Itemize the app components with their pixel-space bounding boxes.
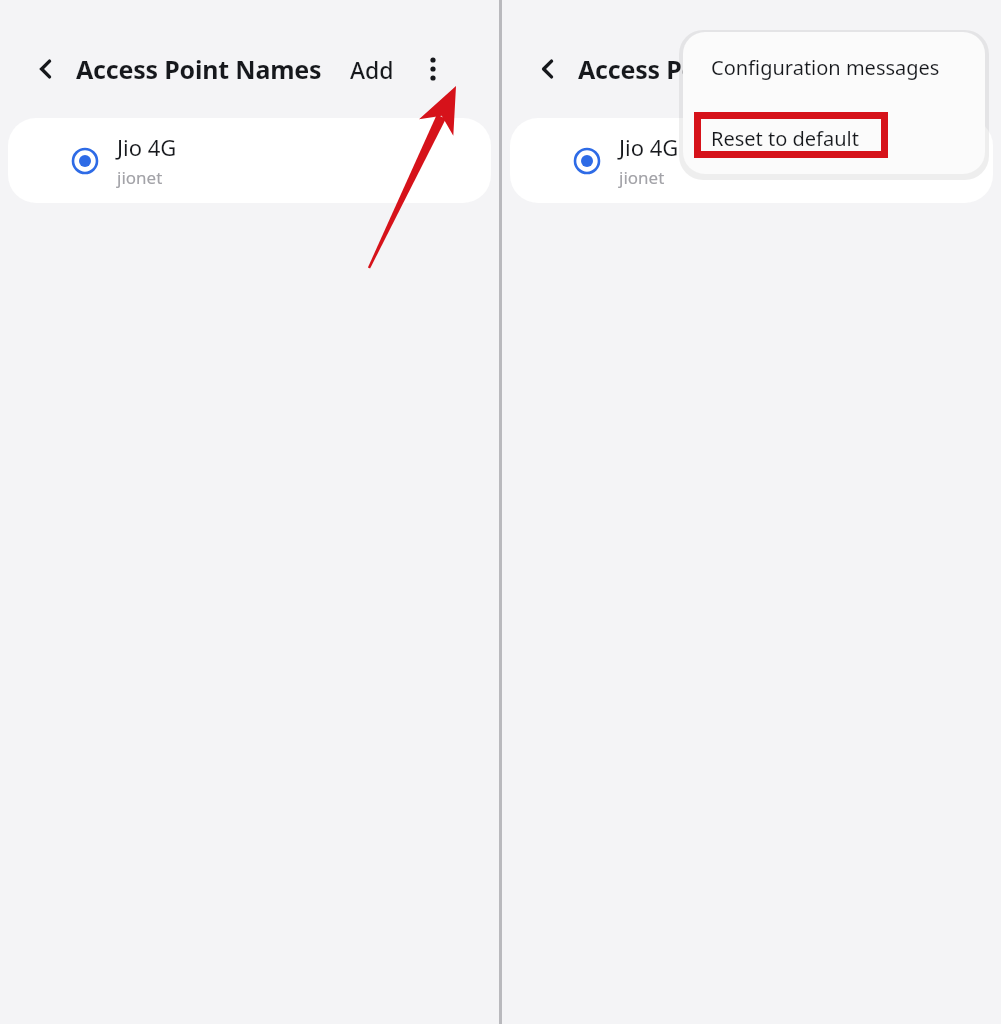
staticText: Jio 4G	[117, 132, 177, 162]
staticText: Configuration messages	[711, 54, 940, 81]
button[interactable]: Jio 4G	[510, 118, 993, 203]
staticText: Access Point Names	[76, 52, 322, 86]
staticText: Reset to default	[711, 125, 859, 152]
button[interactable]: Jio 4G	[8, 118, 491, 203]
staticText: jionet	[619, 166, 665, 189]
staticText: Access Point Names	[578, 52, 824, 86]
button[interactable]: Add	[348, 48, 396, 91]
staticText: Jio 4G	[619, 132, 679, 162]
staticText: jionet	[117, 166, 163, 189]
button[interactable]: Reset to default	[683, 103, 985, 174]
button[interactable]: More options	[412, 48, 454, 90]
button[interactable]: Back	[26, 49, 66, 89]
staticText: Add	[350, 54, 394, 85]
button[interactable]: Configuration messages	[683, 32, 985, 103]
button[interactable]: Back	[528, 49, 568, 89]
